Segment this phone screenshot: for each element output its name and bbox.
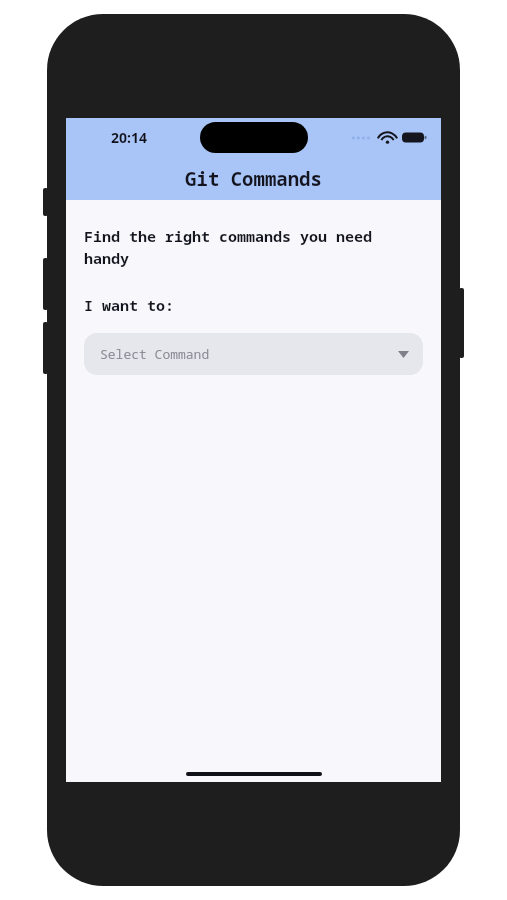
staticText: 20:14 <box>111 128 147 147</box>
staticText: I want to: <box>84 295 175 315</box>
staticText: Select Command <box>100 345 210 363</box>
other: Open command list <box>398 351 409 358</box>
staticText: Find the right commands you need handy <box>84 226 423 269</box>
staticText: Git Commands <box>185 166 322 192</box>
button[interactable]: Select Command <box>84 333 423 375</box>
